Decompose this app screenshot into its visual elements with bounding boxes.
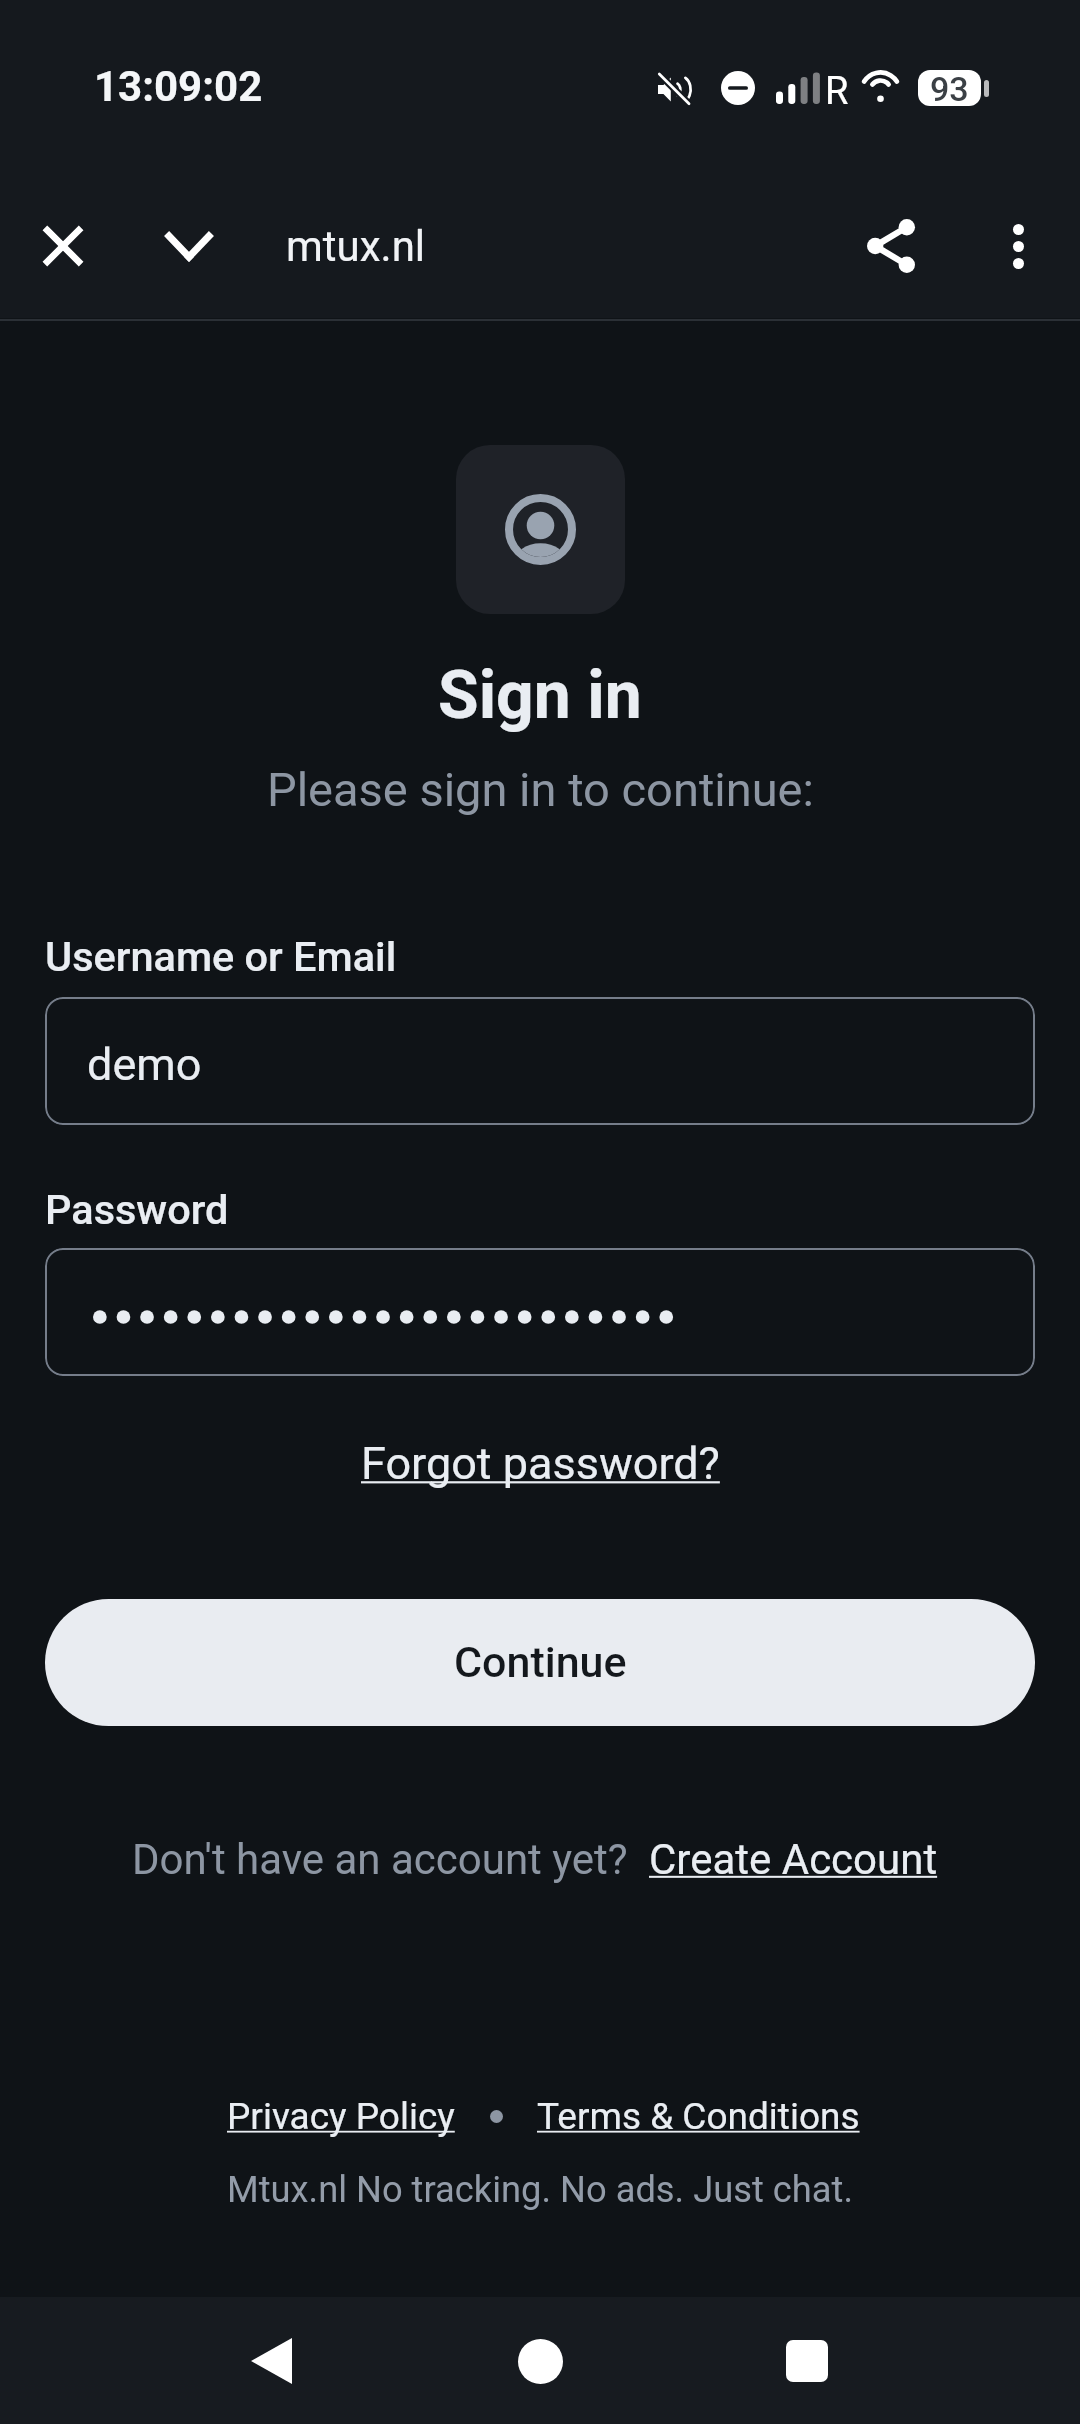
- button[interactable]: Home: [496, 2317, 584, 2405]
- staticText: Sign in: [438, 657, 642, 734]
- staticText: Username or Email: [45, 932, 397, 981]
- button[interactable]: Forgot password?: [361, 1437, 720, 1490]
- button[interactable]: Continue: [45, 1599, 1035, 1726]
- staticText: mtux.nl: [286, 222, 426, 271]
- button[interactable]: Create Account: [649, 1835, 938, 1884]
- staticText: 93: [930, 70, 969, 105]
- button[interactable]: Share: [847, 202, 935, 290]
- button[interactable]: [45, 1248, 1035, 1376]
- button[interactable]: Privacy Policy: [227, 2095, 455, 2138]
- staticText: Password: [45, 1185, 229, 1234]
- button[interactable]: demo: [45, 997, 1035, 1125]
- staticText: Please sign in to continue:: [267, 762, 814, 817]
- staticText: demo: [87, 1038, 202, 1091]
- button[interactable]: Terms & Conditions: [537, 2095, 860, 2138]
- button[interactable]: Close: [19, 202, 107, 290]
- staticText: Mtux.nl No tracking. No ads. Just chat.: [227, 2168, 853, 2211]
- staticText: 13:09:02: [94, 62, 263, 111]
- button[interactable]: Recent apps: [763, 2317, 851, 2405]
- button[interactable]: Show page info: [145, 202, 233, 290]
- button[interactable]: Back: [227, 2317, 315, 2405]
- staticText: Continue: [454, 1637, 627, 1687]
- staticText: R: [825, 69, 849, 114]
- button[interactable]: More options: [974, 202, 1062, 290]
- staticText: Don't have an account yet?: [132, 1835, 628, 1884]
